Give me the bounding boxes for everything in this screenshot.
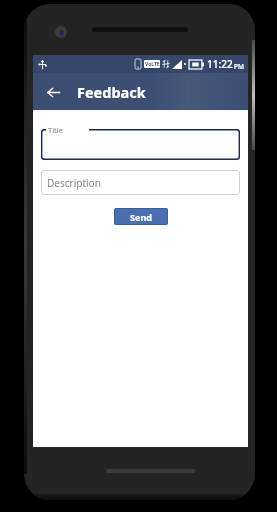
staticText: 11:22: [207, 57, 233, 71]
button[interactable]: Back: [38, 77, 68, 107]
button[interactable]: Description: [41, 170, 240, 195]
staticText: Send: [130, 211, 152, 223]
staticText: Title: [48, 125, 63, 135]
staticText: Feedback: [77, 82, 146, 102]
staticText: VoLTE: [145, 61, 160, 68]
staticText: PM: [234, 62, 244, 71]
button[interactable]: Send: [114, 208, 168, 225]
button[interactable]: Title: [41, 129, 240, 160]
staticText: Description: [47, 176, 101, 190]
other: USB connected: [37, 59, 48, 70]
